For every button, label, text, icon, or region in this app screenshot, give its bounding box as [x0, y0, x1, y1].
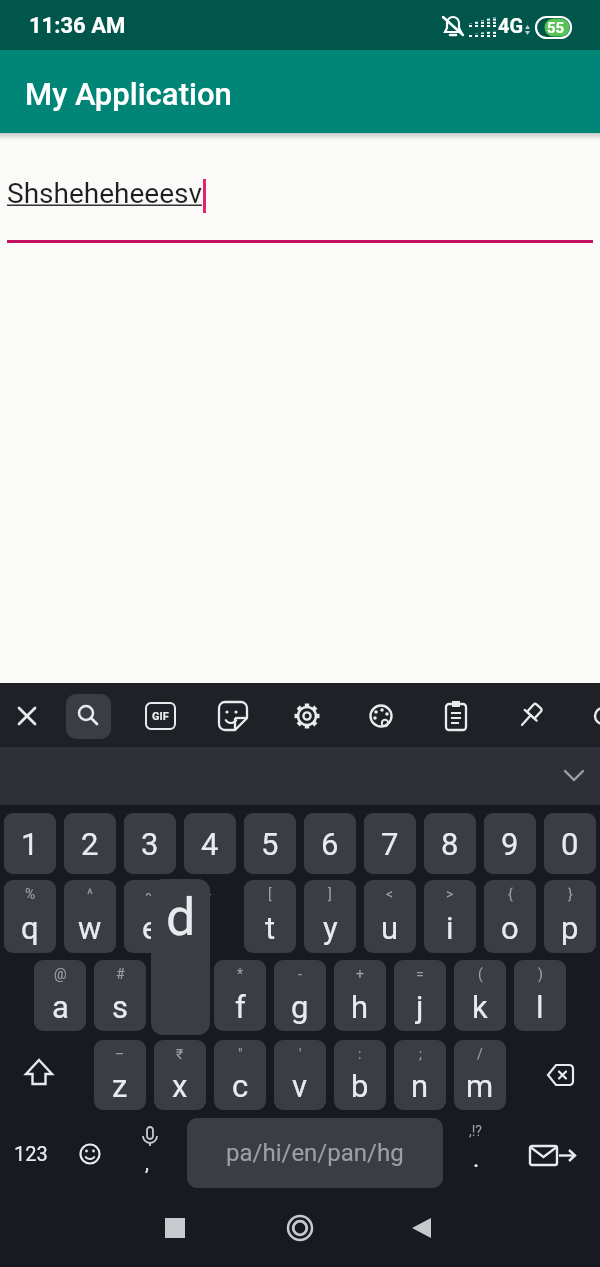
button[interactable]: 8 — [424, 813, 476, 874]
button[interactable] — [520, 1040, 590, 1110]
button[interactable] — [434, 694, 478, 739]
button[interactable] — [452, 1118, 504, 1190]
button[interactable]: - — [274, 960, 326, 1031]
button[interactable]: : — [334, 1040, 386, 1110]
staticText: 9 — [501, 826, 519, 862]
staticText: z — [112, 1068, 128, 1104]
button[interactable]: # — [94, 960, 146, 1031]
button[interactable]: ~ — [124, 880, 176, 953]
button[interactable] — [124, 1118, 176, 1190]
button[interactable]: @ — [34, 960, 86, 1031]
button[interactable]: [ — [244, 880, 296, 953]
button[interactable]: 5 — [244, 813, 296, 874]
button[interactable] — [10, 1040, 80, 1110]
button[interactable]: > — [424, 880, 476, 953]
staticText: 8 — [441, 826, 459, 862]
staticText: m — [466, 1068, 494, 1104]
staticText: l — [536, 989, 544, 1025]
staticText: { — [508, 886, 513, 902]
staticText: i — [446, 910, 454, 946]
button[interactable] — [395, 1198, 455, 1258]
button[interactable] — [285, 694, 329, 739]
staticText: - — [298, 966, 302, 982]
staticText: x — [172, 1068, 188, 1104]
button[interactable] — [270, 1198, 330, 1258]
staticText: # — [116, 966, 125, 982]
button[interactable]: * — [214, 960, 266, 1031]
staticText: [ — [268, 886, 272, 902]
staticText: 3 — [141, 826, 159, 862]
button[interactable]: – — [94, 1040, 146, 1110]
button[interactable] — [138, 694, 182, 739]
button[interactable]: ' — [274, 1040, 326, 1110]
button[interactable]: ₹ — [154, 1040, 206, 1110]
button[interactable]: pa/hi/en/pan/hg — [187, 1118, 443, 1188]
button[interactable] — [211, 694, 255, 739]
staticText: + — [356, 966, 364, 982]
button[interactable] — [64, 1118, 116, 1190]
button[interactable]: " — [214, 1040, 266, 1110]
button[interactable]: + — [334, 960, 386, 1031]
button[interactable]: 2 — [64, 813, 116, 874]
staticText: - — [207, 886, 211, 902]
button[interactable] — [359, 694, 403, 739]
button[interactable]: < — [364, 880, 416, 953]
staticText: * — [237, 966, 244, 982]
button[interactable]: / — [454, 1040, 506, 1110]
button[interactable]: % — [4, 880, 56, 953]
staticText: } — [568, 886, 573, 902]
staticText: g — [291, 989, 309, 1025]
button[interactable]: = — [394, 960, 446, 1031]
button[interactable]: 1 — [4, 813, 56, 874]
button[interactable]: { — [484, 880, 536, 953]
button[interactable] — [66, 694, 110, 739]
button[interactable] — [5, 694, 49, 739]
button[interactable]: ( — [454, 960, 506, 1031]
staticText: @ — [54, 966, 67, 982]
button[interactable] — [4, 1118, 56, 1190]
staticText: a — [52, 989, 69, 1025]
staticText: > — [446, 886, 454, 902]
staticText: / — [477, 1046, 483, 1062]
staticText: d — [166, 887, 196, 948]
staticText: . — [473, 1145, 480, 1173]
staticText: 123 — [14, 1142, 48, 1165]
staticText: 6 — [321, 826, 339, 862]
staticText: Shsheheheeesv — [7, 177, 203, 210]
button[interactable]: 3 — [124, 813, 176, 874]
staticText: < — [386, 886, 394, 902]
button[interactable]: 9 — [484, 813, 536, 874]
staticText: – — [115, 1046, 125, 1062]
staticText: ' — [299, 1046, 302, 1062]
staticText: ) — [538, 966, 543, 982]
staticText: 7 — [381, 826, 399, 862]
button[interactable]: ^ — [64, 880, 116, 953]
staticText: pa/hi/en/pan/hg — [226, 1139, 404, 1167]
staticText: ( — [478, 966, 483, 982]
staticText: My Application — [25, 76, 232, 112]
staticText: ] — [328, 886, 332, 902]
button[interactable] — [520, 1118, 590, 1190]
staticText: y — [323, 910, 338, 946]
button[interactable]: ) — [514, 960, 566, 1031]
button[interactable]: ] — [304, 880, 356, 953]
button[interactable]: 6 — [304, 813, 356, 874]
staticText: 55 — [547, 19, 565, 37]
button[interactable] — [145, 1198, 205, 1258]
button[interactable]: 7 — [364, 813, 416, 874]
button[interactable] — [66, 694, 111, 739]
button[interactable] — [0, 145, 600, 250]
staticText: b — [351, 1068, 369, 1104]
staticText: h — [351, 989, 369, 1025]
button[interactable]: 4 — [184, 813, 236, 874]
button[interactable]: 0 — [544, 813, 596, 874]
button[interactable]: ; — [394, 1040, 446, 1110]
staticText: 2 — [81, 826, 99, 862]
staticText: w — [78, 910, 102, 946]
staticText: v — [292, 1068, 308, 1104]
button[interactable]: } — [544, 880, 596, 953]
button[interactable] — [508, 694, 552, 739]
staticText: 1 — [21, 826, 39, 862]
